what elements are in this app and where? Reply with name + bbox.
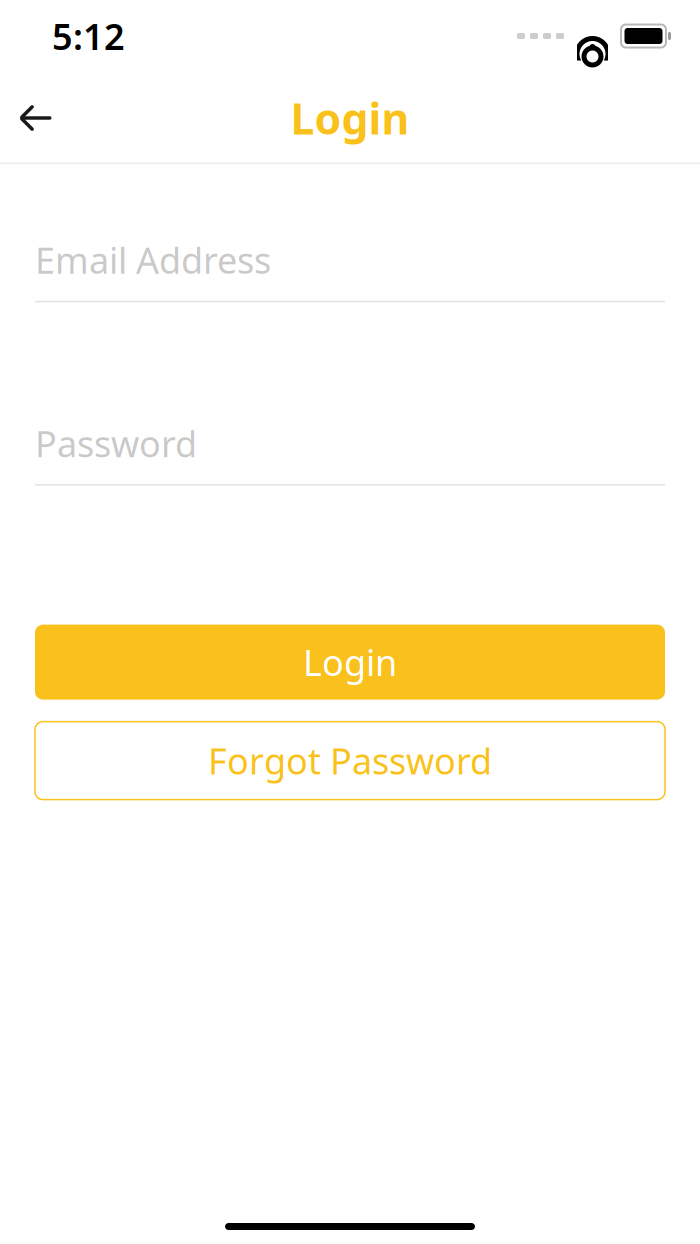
button[interactable]: Forgot Password <box>35 722 665 800</box>
staticText: Email Address <box>35 236 271 284</box>
staticText: Login <box>303 638 397 686</box>
staticText: Forgot Password <box>208 737 492 784</box>
staticText: Login <box>290 90 409 146</box>
staticText: 5:12 <box>52 12 125 60</box>
button[interactable]: Login <box>35 625 665 700</box>
button[interactable]: Back <box>3 87 65 149</box>
staticText: Password <box>35 419 197 467</box>
